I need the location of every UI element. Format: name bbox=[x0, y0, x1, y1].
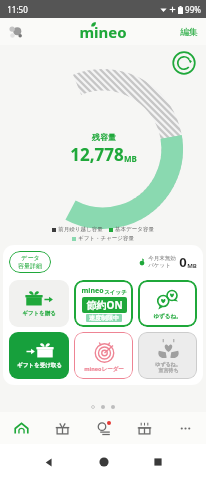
staticText: mineo bbox=[79, 22, 127, 42]
staticText: パケット bbox=[148, 262, 171, 269]
staticText: 前月繰り越し容量 bbox=[58, 226, 103, 233]
staticText: データ bbox=[21, 254, 40, 262]
staticText: MB bbox=[124, 153, 137, 164]
button[interactable]: mineo bbox=[74, 280, 133, 327]
button[interactable]: データ bbox=[9, 251, 51, 273]
button[interactable]: ギフトを贈る bbox=[9, 280, 69, 327]
button[interactable]: mineoレーダー bbox=[74, 332, 133, 379]
other: Recents bbox=[153, 457, 163, 467]
button[interactable]: Messages bbox=[83, 412, 124, 444]
staticText: 今月末無効 bbox=[148, 255, 176, 262]
other: Back bbox=[43, 457, 54, 468]
staticText: ギフト・チャージ容量 bbox=[78, 235, 134, 242]
staticText: mineo bbox=[81, 286, 104, 296]
staticText: 残容量 bbox=[92, 132, 116, 142]
staticText: 速度制限中 bbox=[89, 314, 119, 322]
button[interactable]: 編集 bbox=[178, 23, 200, 40]
button[interactable]: Services bbox=[124, 412, 165, 444]
staticText: MB bbox=[187, 262, 197, 270]
other: Home bbox=[98, 456, 110, 468]
staticText: mineoレーダー bbox=[84, 365, 124, 373]
staticText: 12,778 bbox=[70, 143, 124, 166]
staticText: ギフトを贈る bbox=[22, 310, 56, 317]
staticText: 容量詳細 bbox=[18, 262, 42, 270]
staticText: ゆずるね。 bbox=[153, 313, 182, 320]
staticText: 編集 bbox=[180, 26, 198, 37]
staticText: 節約ON bbox=[86, 298, 123, 312]
staticText: 宣言待ち bbox=[158, 367, 179, 373]
staticText: 11:50 bbox=[7, 4, 28, 15]
staticText: ゆずるね。 bbox=[155, 361, 181, 367]
staticText: 0 bbox=[179, 253, 187, 271]
staticText: ギフトを受け取る bbox=[17, 362, 62, 369]
staticText: 基本データ容量 bbox=[115, 226, 154, 233]
button[interactable]: Refresh bbox=[172, 51, 196, 75]
staticText: スイッチ bbox=[104, 289, 127, 296]
button[interactable]: ギフトを受け取る bbox=[9, 332, 69, 379]
button[interactable]: Coupons bbox=[42, 412, 83, 444]
staticText: 99% bbox=[185, 4, 201, 15]
button[interactable]: Home bbox=[0, 412, 42, 444]
button[interactable]: ゆずるね。 bbox=[138, 332, 197, 379]
button[interactable]: Profile bbox=[6, 22, 25, 41]
button[interactable]: More bbox=[165, 412, 206, 444]
button[interactable]: ゆずるね。 bbox=[138, 280, 197, 327]
